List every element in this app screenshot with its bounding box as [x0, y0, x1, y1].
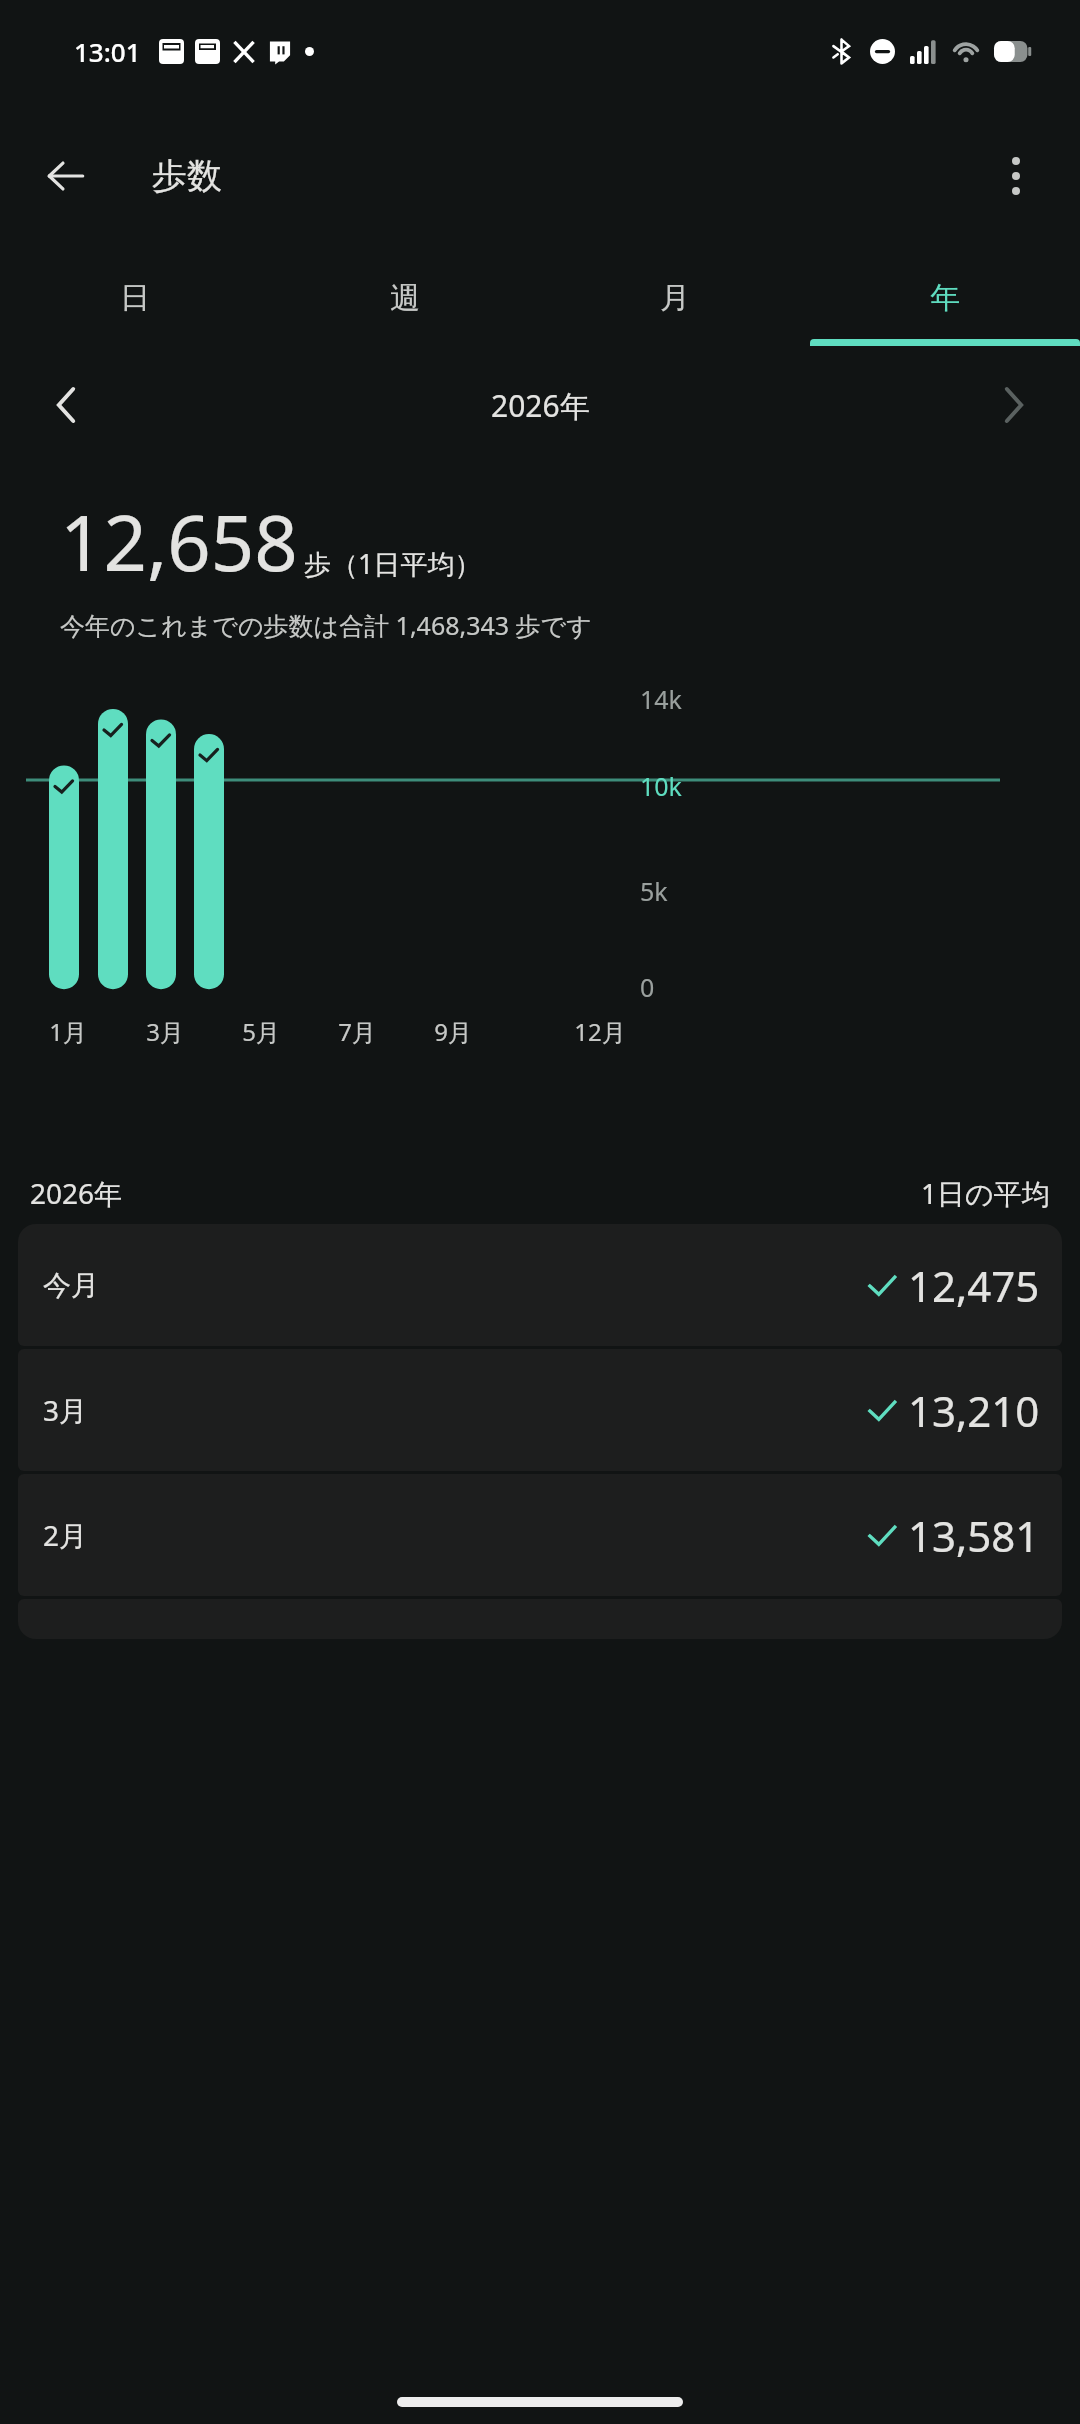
staticText: 3月 — [43, 1391, 88, 1429]
staticText: 7月 — [338, 1015, 376, 1048]
staticText: 12月 — [574, 1015, 626, 1048]
button[interactable]: 次の年 — [980, 371, 1048, 439]
staticText: 12,658 — [60, 490, 298, 594]
staticText: 13,581 — [908, 1507, 1040, 1564]
staticText: 14k — [640, 682, 682, 716]
staticText: 年 — [930, 279, 960, 317]
button[interactable]: 2月 — [18, 1474, 1062, 1596]
staticText: 13:01 — [74, 34, 141, 69]
staticText: 9月 — [434, 1015, 472, 1048]
staticText: 月 — [660, 279, 690, 317]
staticText: 1月 — [49, 1015, 87, 1048]
staticText: 5k — [640, 874, 668, 908]
staticText: 2026年 — [491, 385, 590, 426]
button[interactable]: 前の年 — [32, 371, 100, 439]
staticText: 13,210 — [908, 1382, 1040, 1439]
staticText: 2月 — [43, 1516, 88, 1554]
staticText: 日 — [120, 279, 150, 317]
button[interactable]: 月 — [540, 250, 810, 346]
staticText: 歩（1日平均） — [304, 545, 482, 582]
button[interactable]: 週 — [270, 250, 540, 346]
staticText: 0 — [640, 970, 655, 1004]
button[interactable]: 年 — [810, 250, 1080, 346]
staticText: 3月 — [146, 1015, 184, 1048]
staticText: 10k — [640, 769, 682, 803]
staticText: 今年のこれまでの歩数は合計 1,468,343 歩です — [60, 608, 592, 642]
staticText: 歩数 — [152, 154, 222, 198]
button[interactable]: 3月 — [18, 1349, 1062, 1471]
button[interactable]: 戻る — [30, 140, 102, 212]
staticText: 5月 — [242, 1015, 280, 1048]
button[interactable]: その他のオプション — [980, 140, 1052, 212]
staticText: 週 — [390, 279, 420, 317]
button[interactable]: 日 — [0, 250, 270, 346]
staticText: 2026年 — [30, 1174, 123, 1212]
staticText: 12,475 — [908, 1257, 1040, 1314]
staticText: 今月 — [43, 1268, 99, 1303]
staticText: 1日の平均 — [921, 1174, 1050, 1212]
button[interactable]: 今月 — [18, 1224, 1062, 1346]
